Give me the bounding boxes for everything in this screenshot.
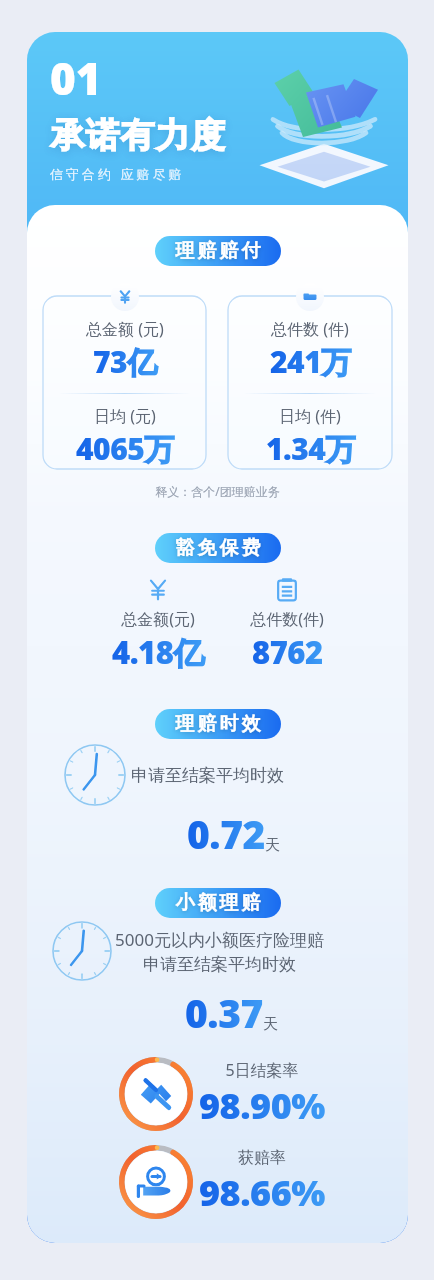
staticText: 8762 [252, 631, 323, 673]
button[interactable]: 总件数(件) [246, 577, 328, 673]
staticText: 日均 (元) [94, 405, 156, 427]
staticText: 241万 [270, 341, 351, 382]
staticText: 5000元以内小额医疗险理赔 [115, 928, 324, 951]
staticText: 5日结案率 [225, 1059, 299, 1081]
button[interactable]: 总件数 (件) [228, 296, 392, 469]
staticText: 总金额(元) [121, 608, 195, 630]
staticText: 获赔率 [238, 1148, 286, 1168]
staticText: 日均 (件) [279, 405, 341, 427]
button[interactable]: 总金额 (元) [43, 296, 206, 469]
button[interactable]: 获赔率 [119, 1145, 378, 1219]
staticText: 承诺有力度 [50, 114, 225, 157]
staticText: 98.90% [199, 1081, 325, 1130]
button[interactable]: 理赔时效 [155, 709, 281, 739]
staticText: 01 [50, 48, 102, 108]
staticText: 释义：含个/团理赔业务 [155, 483, 280, 499]
staticText: 0.37 [185, 986, 263, 1039]
staticText: 申请至结案平均时效 [143, 954, 296, 975]
staticText: 98.66% [199, 1168, 325, 1217]
button[interactable]: 豁免保费 [155, 533, 281, 563]
staticText: 总金额 (元) [86, 318, 164, 340]
staticText: 信守合约 应赔尽赔 [50, 165, 185, 183]
button[interactable]: 5日结案率 [119, 1057, 378, 1131]
staticText: 总件数 (件) [271, 318, 349, 340]
staticText: 理赔赔付 [174, 239, 262, 263]
staticText: 申请至结案平均时效 [131, 765, 284, 786]
staticText: 0.72 [187, 807, 265, 860]
staticText: 总件数(件) [250, 608, 324, 630]
button[interactable]: 5日结案率 [119, 1057, 193, 1131]
staticText: 4065万 [76, 428, 174, 469]
staticText: 4.18亿 [112, 631, 204, 673]
staticText: 小额理赔 [174, 891, 262, 915]
staticText: 天 [263, 1015, 278, 1034]
staticText: 豁免保费 [174, 536, 262, 560]
staticText: 1.34万 [266, 428, 355, 469]
button[interactable]: 理赔赔付 [155, 236, 281, 266]
staticText: 理赔时效 [174, 712, 262, 736]
button[interactable]: 总金额(元) [108, 577, 208, 673]
staticText: 天 [265, 836, 280, 855]
button[interactable]: 小额理赔 [155, 888, 281, 918]
staticText: 73亿 [93, 341, 157, 382]
button[interactable]: 获赔率 [119, 1145, 193, 1219]
